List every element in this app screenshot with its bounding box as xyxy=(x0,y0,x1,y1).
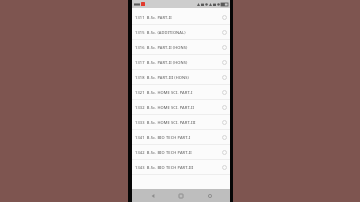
button[interactable]: 1333 B.Sc. HOME SCI. PART-III xyxy=(132,115,230,130)
staticText: 1333 B.Sc. HOME SCI. PART-III xyxy=(135,120,222,125)
staticText: 1342 B.Sc. BIO TECH PART-II xyxy=(135,150,222,155)
button[interactable]: 1321 B.Sc. HOME SCI. PART-I xyxy=(132,85,230,100)
button[interactable]: Back xyxy=(145,189,161,202)
button[interactable]: 1332 B.Sc. HOME SCI. PART-II xyxy=(132,100,230,115)
staticText: 1315 B.Sc. (ADDITIONAL) xyxy=(135,30,222,35)
button[interactable]: 1342 B.Sc. BIO TECH PART-II xyxy=(132,145,230,160)
button[interactable]: 1341 B.Sc. BIO TECH PART-I xyxy=(132,130,230,145)
staticText: 1341 B.Sc. BIO TECH PART-I xyxy=(135,135,222,140)
button[interactable]: 1311 B.Sc. PART-II xyxy=(132,10,230,25)
staticText: 1318 B.Sc. PART-III (HONS) xyxy=(135,75,222,80)
staticText: 1317 B.Sc. PART-II (HONS) xyxy=(135,60,222,65)
button[interactable]: 1315 B.Sc. (ADDITIONAL) xyxy=(132,25,230,40)
button[interactable]: 1343 B.Sc. BIO TECH PART-III xyxy=(132,160,230,175)
staticText: 1316 B.Sc. PART-II (HONS) xyxy=(135,45,222,50)
staticText: 1343 B.Sc. BIO TECH PART-III xyxy=(135,165,222,170)
button[interactable]: Home xyxy=(173,189,189,202)
button[interactable]: 1316 B.Sc. PART-II (HONS) xyxy=(132,40,230,55)
button[interactable]: Recent apps xyxy=(202,189,218,202)
button[interactable]: 1317 B.Sc. PART-II (HONS) xyxy=(132,55,230,70)
staticText: 1332 B.Sc. HOME SCI. PART-II xyxy=(135,105,222,110)
button[interactable]: 1318 B.Sc. PART-III (HONS) xyxy=(132,70,230,85)
staticText: 1311 B.Sc. PART-II xyxy=(135,15,222,20)
staticText: 1321 B.Sc. HOME SCI. PART-I xyxy=(135,90,222,95)
